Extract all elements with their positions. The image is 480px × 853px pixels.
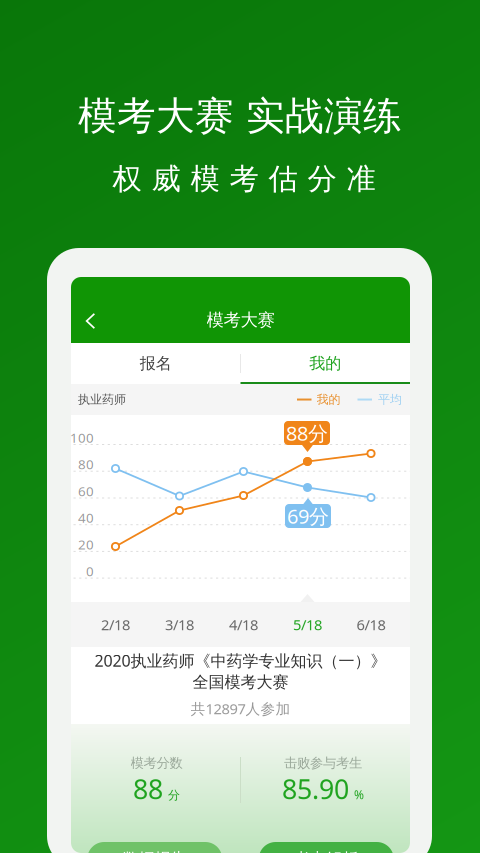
staticText: 报名 [140,354,172,373]
button[interactable]: 6/18 [342,602,400,647]
staticText: 模考大赛 实战演练 [78,92,402,140]
staticText: 击败参与考生 [284,755,362,771]
staticText: 40 [78,509,94,526]
staticText: 85.90 [282,771,349,807]
button[interactable]: 5/18 [278,602,336,647]
staticText: 数据报告 [123,849,187,853]
button[interactable]: 4/18 [214,602,272,647]
staticText: 平均 [378,392,402,407]
staticText: 共12897人参加 [190,699,290,718]
staticText: 0 [86,562,94,580]
staticText: 全国模考大赛 [192,672,288,692]
button[interactable]: 考点解析 [259,842,394,853]
button[interactable]: 2/18 [86,602,144,647]
button[interactable]: 3/18 [150,602,208,647]
staticText: 2/18 [101,615,130,634]
button[interactable]: Back [76,299,105,343]
button[interactable]: 我的 [240,343,410,384]
staticText: 考点解析 [294,849,358,853]
staticText: 权威模考估分准 [112,161,375,197]
staticText: 20 [78,535,94,553]
staticText: 我的 [309,354,341,373]
staticText: 我的 [316,392,340,407]
staticText: 4/18 [229,615,258,634]
staticText: % [354,787,364,803]
staticText: 80 [78,455,94,473]
button[interactable]: 报名 [71,343,240,384]
staticText: 69分 [287,503,329,529]
button[interactable]: 数据报告 [87,842,222,853]
staticText: 模考分数 [130,755,182,771]
staticText: 分 [168,788,180,803]
staticText: 100 [70,429,94,446]
staticText: 模考大赛 [206,309,274,331]
staticText: 88分 [286,420,328,446]
staticText: 60 [78,482,94,500]
staticText: 88 [133,771,163,807]
staticText: 6/18 [356,615,385,634]
staticText: 2020执业药师《中药学专业知识（一）》 [94,650,386,671]
staticText: 执业药师 [78,392,126,407]
staticText: 3/18 [165,615,194,634]
staticText: 5/18 [293,615,322,634]
